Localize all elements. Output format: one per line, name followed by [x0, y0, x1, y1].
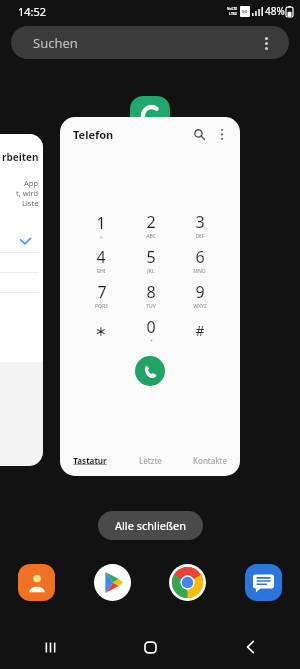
staticText: Kontakte: [193, 455, 227, 466]
button[interactable]: 1: [76, 208, 126, 243]
staticText: Alle schließen: [115, 518, 186, 533]
button[interactable]: Tastatur: [60, 444, 120, 476]
staticText: JKL: [147, 268, 155, 275]
button[interactable]: 6: [175, 243, 224, 278]
staticText: GHI: [96, 268, 106, 275]
staticText: 48%: [265, 4, 285, 18]
button[interactable]: Chrome: [169, 564, 206, 601]
staticText: VoLTE: [227, 6, 238, 11]
button[interactable]: ∗: [76, 313, 126, 348]
button[interactable]: Suchen: [11, 26, 289, 59]
button[interactable]: Nachrichten: [245, 564, 282, 601]
staticText: ∗: [95, 323, 107, 339]
staticText: TUV: [146, 303, 156, 310]
button[interactable]: 0: [126, 313, 175, 348]
button[interactable]: Mehr Optionen: [214, 126, 230, 142]
button[interactable]: Anrufen: [135, 356, 165, 386]
staticText: LTE2: [229, 11, 237, 16]
button[interactable]: rbeiten: [0, 134, 43, 466]
staticText: ABC: [146, 233, 156, 240]
staticText: Tastatur: [73, 455, 107, 466]
staticText: ∞: [99, 234, 104, 240]
button[interactable]: 2: [126, 208, 175, 243]
staticText: Telefon: [73, 127, 114, 142]
button[interactable]: Kontakte: [18, 564, 55, 601]
button[interactable]: 4: [76, 243, 126, 278]
staticText: 7: [97, 281, 107, 303]
button[interactable]: Letzte Apps: [0, 625, 100, 669]
staticText: 2: [146, 211, 156, 233]
staticText: 4: [96, 246, 106, 268]
button[interactable]: Letzte: [120, 444, 180, 476]
staticText: DEF: [195, 233, 205, 240]
staticText: 5G: [242, 9, 248, 14]
staticText: rbeiten: [2, 150, 39, 164]
button[interactable]: Startseite: [100, 625, 200, 669]
staticText: 0: [146, 316, 156, 338]
button[interactable]: 5: [126, 243, 175, 278]
button[interactable]: Play Store: [94, 564, 131, 601]
staticText: Suchen: [33, 34, 78, 52]
staticText: MNO: [193, 268, 206, 275]
staticText: 8: [146, 281, 156, 303]
staticText: Liste: [22, 198, 39, 208]
button[interactable]: Mehr Optionen: [257, 34, 275, 52]
button[interactable]: Zurück: [200, 625, 300, 669]
button[interactable]: Telefon App: [130, 96, 170, 136]
button[interactable]: 3: [175, 208, 224, 243]
staticText: 9: [195, 281, 205, 303]
staticText: 1: [96, 212, 106, 234]
staticText: 3: [195, 211, 205, 233]
staticText: 5: [146, 246, 156, 268]
button[interactable]: Telefon: [60, 117, 240, 476]
button[interactable]: 7: [76, 278, 126, 313]
button[interactable]: Suche: [190, 125, 208, 143]
staticText: WXYZ: [193, 303, 207, 310]
button[interactable]: #: [175, 313, 224, 348]
staticText: t, wird: [16, 188, 39, 198]
button[interactable]: Kontakte: [180, 444, 240, 476]
button[interactable]: 8: [126, 278, 175, 313]
button[interactable]: 9: [175, 278, 224, 313]
staticText: 14:52: [18, 4, 47, 19]
staticText: +: [150, 338, 153, 345]
staticText: App: [24, 178, 39, 188]
staticText: #: [195, 321, 205, 340]
button[interactable]: Alle schließen: [98, 511, 203, 540]
staticText: Letzte: [139, 455, 162, 466]
staticText: 6: [195, 246, 205, 268]
staticText: PQRS: [95, 303, 108, 310]
